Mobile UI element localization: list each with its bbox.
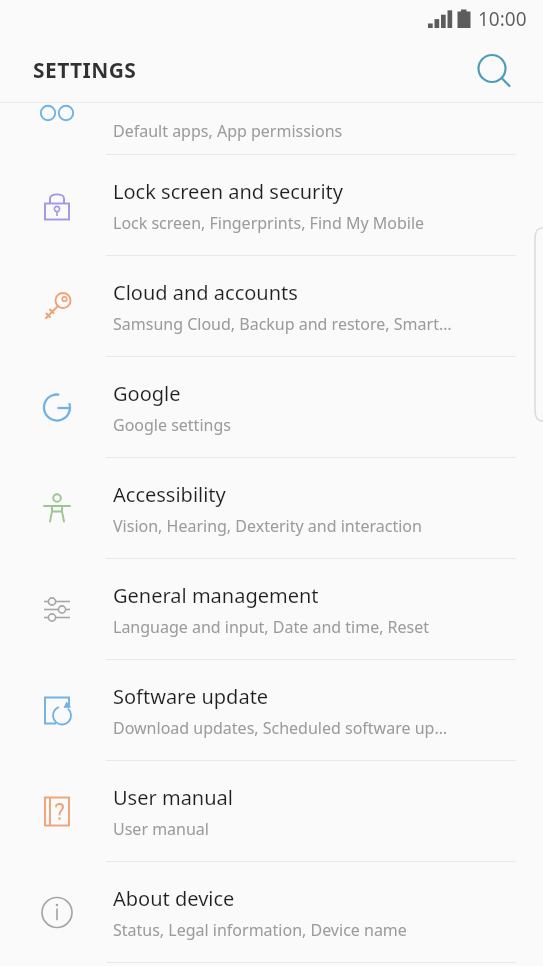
staticText: User manual	[113, 784, 233, 811]
staticText: About device	[113, 885, 235, 912]
staticText: Download updates, Scheduled software up…	[113, 717, 448, 739]
button[interactable]: General management	[0, 559, 543, 660]
button[interactable]: Accessibility	[0, 458, 543, 559]
button[interactable]: Search	[470, 47, 518, 95]
staticText: Language and input, Date and time, Reset	[113, 616, 430, 638]
staticText: Software update	[113, 683, 269, 710]
staticText: Google settings	[113, 414, 231, 436]
button[interactable]: User manual	[0, 761, 543, 862]
button[interactable]: Software update	[0, 660, 543, 761]
staticText: User manual	[113, 818, 209, 840]
staticText: SETTINGS	[33, 56, 137, 85]
staticText: Samsung Cloud, Backup and restore, Smart…	[113, 313, 452, 335]
button[interactable]: Lock screen and security	[0, 155, 543, 256]
button[interactable]: Default apps, App permissions	[0, 103, 543, 155]
staticText: Google	[113, 380, 181, 407]
staticText: Lock screen, Fingerprints, Find My Mobil…	[113, 212, 425, 234]
button[interactable]: About device	[0, 862, 543, 963]
button[interactable]: Google	[0, 357, 543, 458]
staticText: General management	[113, 582, 319, 609]
button[interactable]: Cloud and accounts	[0, 256, 543, 357]
staticText: Default apps, App permissions	[113, 120, 343, 142]
staticText: Status, Legal information, Device name	[113, 919, 407, 941]
staticText: Lock screen and security	[113, 178, 343, 205]
staticText: Vision, Hearing, Dexterity and interacti…	[113, 515, 422, 537]
staticText: Accessibility	[113, 481, 226, 508]
staticText: 10:00	[478, 6, 527, 32]
staticText: Cloud and accounts	[113, 279, 298, 306]
